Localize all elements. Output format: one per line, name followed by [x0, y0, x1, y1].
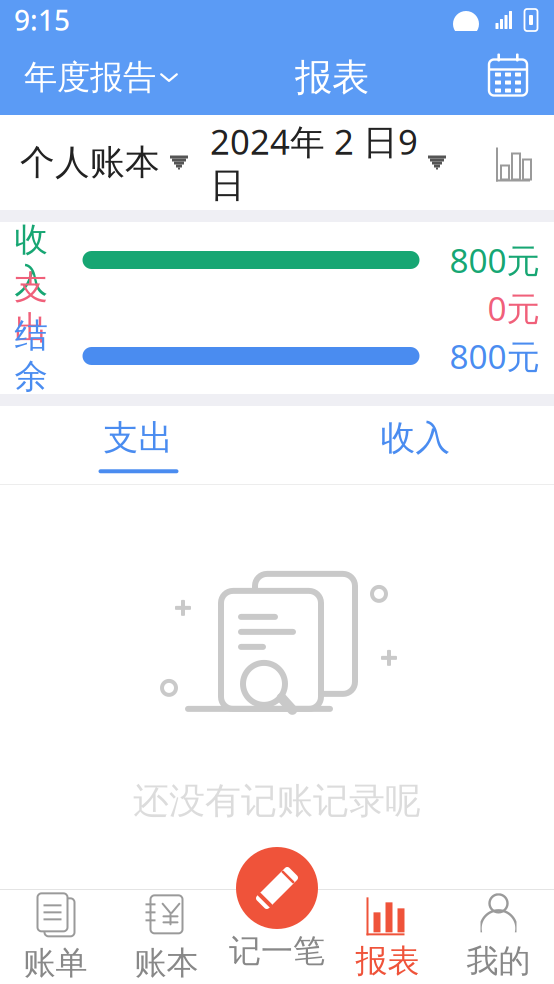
button[interactable]: 选择日期	[474, 49, 542, 105]
staticText: 个人账本	[20, 141, 160, 184]
button[interactable]: 账本	[111, 890, 222, 984]
button[interactable]: 支出	[0, 406, 277, 484]
staticText: 我的	[466, 941, 530, 981]
staticText: 800元	[449, 334, 539, 378]
staticText: 9:15	[14, 1, 70, 39]
staticText: 2024年 2 日9 日	[210, 118, 418, 207]
button[interactable]: 我的	[443, 890, 554, 984]
staticText: 收入	[14, 219, 47, 301]
button[interactable]: 报表	[332, 890, 443, 984]
staticText: 800元	[449, 238, 539, 282]
staticText: 账单	[23, 943, 87, 983]
button[interactable]: 2024年 2 日9 日	[210, 118, 446, 207]
staticText: 账本	[134, 943, 198, 983]
staticText: 年度报告	[24, 57, 156, 98]
button[interactable]: 记一笔	[234, 845, 320, 931]
staticText: 0元	[487, 286, 539, 330]
button[interactable]: 个人账本	[20, 141, 188, 184]
staticText: 报表	[355, 941, 419, 981]
button[interactable]: 账单	[0, 890, 111, 984]
button[interactable]: 收入	[277, 406, 554, 484]
button[interactable]: 图表	[496, 143, 534, 181]
staticText: 记一笔	[229, 931, 325, 971]
staticText: 支出	[103, 417, 173, 459]
button[interactable]: 年度报告	[12, 51, 190, 104]
staticText: 报表	[295, 55, 369, 100]
staticText: 结余	[14, 315, 47, 397]
staticText: 还没有记账记录呢	[133, 779, 421, 823]
staticText: 支出	[14, 267, 47, 349]
button[interactable]: 记一笔	[222, 890, 332, 984]
staticText: 收入	[380, 417, 450, 459]
